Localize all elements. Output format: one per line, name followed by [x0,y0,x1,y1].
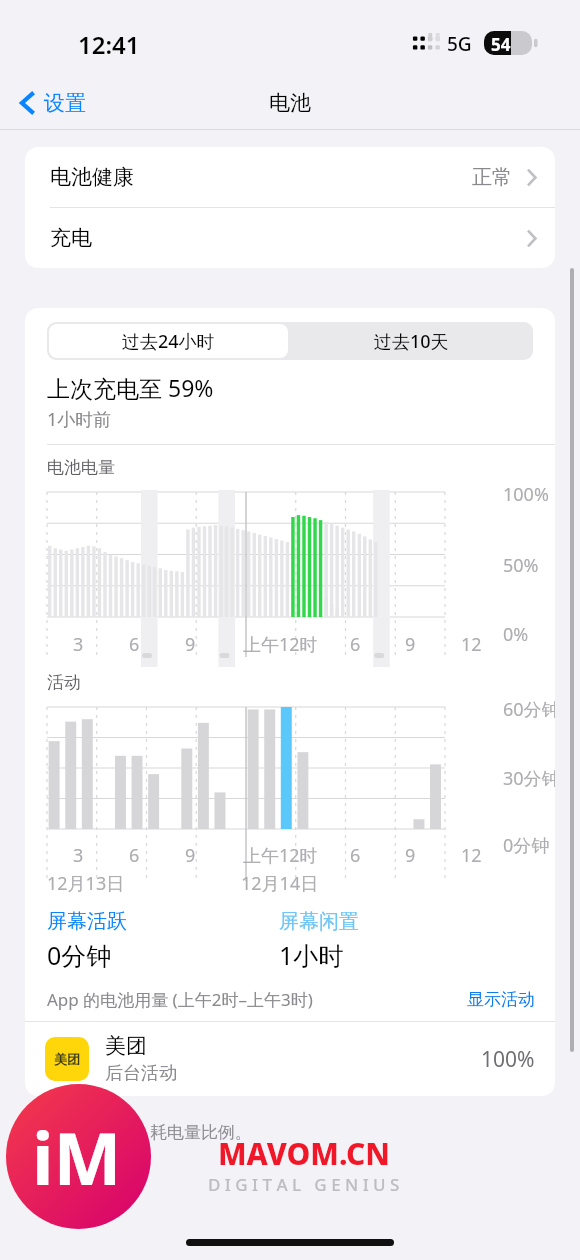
staticText: 100% [481,1045,535,1074]
staticText: 充电 [50,225,92,251]
staticText: 过去24小时 [122,329,215,354]
staticText: 活动 [47,672,81,693]
staticText: 美团 [105,1033,147,1059]
staticText: 1小时前 [47,407,112,432]
staticText: 12 [461,843,482,868]
staticText: 50% [503,553,539,578]
staticText: MAVOM.CN [218,1133,390,1174]
staticText: 6 [350,843,361,868]
staticText: 0% [503,622,529,647]
staticText: 9 [405,632,416,657]
button[interactable]: 美团 [25,1022,555,1096]
staticText: 9 [405,843,416,868]
button[interactable]: 充电 [25,208,555,268]
staticText: 9 [185,632,196,657]
staticText: 屏幕闲置 [279,909,359,934]
staticText: 6 [129,632,140,657]
staticText: 0分钟 [503,833,550,858]
staticText: 上午12时 [243,843,318,868]
staticText: 显示活动 [467,989,535,1010]
staticText: 30分钟 [503,766,555,791]
staticText: 12月14日 [241,871,319,896]
staticText: 5G [447,31,472,57]
staticText: 设置 [44,90,86,116]
staticText: 过去10天 [374,329,449,354]
staticText: 3 [73,632,84,657]
staticText: 1小时 [279,938,344,972]
staticText: 12:41 [78,28,140,61]
button[interactable]: 显示活动 [467,989,535,1010]
staticText: 电池 [269,90,311,116]
staticText: 屏幕活跃 [47,909,127,934]
staticText: 6 [350,632,361,657]
staticText: iM [32,1108,122,1206]
staticText: 电池健康 [50,164,134,190]
staticText: 电池电量 [47,457,115,478]
staticText: 耗电量比例。 [150,1122,252,1143]
button[interactable]: 电池健康 [25,147,555,207]
staticText: 54 [491,33,511,56]
staticText: 9 [185,843,196,868]
button[interactable]: 过去10天 [290,322,533,360]
staticText: 12月13日 [47,871,125,896]
staticText: 3 [73,843,84,868]
button[interactable]: 过去24小时 [49,324,288,358]
staticText: 正常 [472,165,512,190]
staticText: 上次充电至 59% [47,372,214,403]
staticText: 60分钟 [503,697,555,722]
staticText: 12 [461,632,482,657]
staticText: App 的电池用量 (上午2时–上午3时) [47,988,313,1011]
staticText: 100% [503,482,549,507]
staticText: 上午12时 [243,632,318,657]
staticText: 0分钟 [47,938,112,972]
staticText: 6 [129,843,140,868]
staticText: D I G I T A L G E N I U S [208,1173,400,1196]
button[interactable]: 设置 [12,76,94,130]
staticText: 美团 [54,1051,80,1067]
staticText: 后台活动 [105,1062,177,1085]
